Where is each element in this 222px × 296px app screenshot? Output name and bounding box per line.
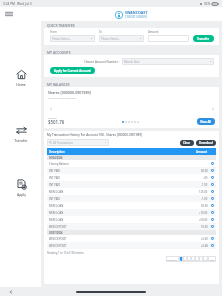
staticText: Wed, Jul 3 bbox=[17, 2, 32, 6]
button[interactable]: INT PAID bbox=[47, 195, 216, 202]
staticText: 5 bbox=[196, 258, 198, 261]
staticText: 10.00 bbox=[201, 225, 208, 229]
other: Transaction details bbox=[211, 169, 214, 172]
other: Transaction details bbox=[211, 183, 214, 186]
staticText: -.05 bbox=[203, 176, 208, 180]
staticText: Amount bbox=[196, 150, 208, 154]
staticText: MEM LOAN bbox=[49, 218, 199, 222]
staticText: Please Select... bbox=[101, 37, 139, 41]
staticText: WEB DEPOSIT bbox=[49, 244, 201, 248]
staticText: All Transactions bbox=[53, 141, 104, 145]
staticText: … bbox=[200, 258, 202, 261]
button[interactable]: Apply for Current Account bbox=[50, 67, 95, 74]
staticText: Description bbox=[49, 150, 196, 154]
button[interactable]: WEB DEPOSIT bbox=[47, 235, 216, 242]
staticText: +50.00 bbox=[199, 218, 208, 222]
staticText: Apply for Current Account bbox=[54, 69, 91, 73]
other: Transaction details bbox=[211, 218, 214, 221]
staticText: Next bbox=[209, 258, 215, 261]
staticText: To bbox=[99, 30, 103, 34]
button[interactable]: Next bbox=[208, 256, 216, 262]
button[interactable]: MEM LOAN bbox=[47, 216, 216, 223]
staticText: Choose Account Number : bbox=[84, 60, 120, 64]
button[interactable]: WEB DEPOSIT bbox=[47, 242, 216, 249]
button[interactable]: Back bbox=[8, 289, 13, 294]
staticText: WEB DEPOSIT bbox=[49, 225, 201, 229]
button[interactable] bbox=[148, 35, 189, 42]
other: Transaction details bbox=[211, 237, 214, 240]
button[interactable]: Closing Balance bbox=[47, 160, 216, 167]
button[interactable]: Clear bbox=[180, 140, 194, 146]
button[interactable]: Download bbox=[196, 140, 216, 146]
staticText: Balance bbox=[48, 116, 57, 119]
button[interactable]: Please Select... bbox=[50, 35, 95, 42]
button[interactable]: MEM LOAN bbox=[47, 202, 216, 209]
staticText: $501.76 bbox=[48, 119, 65, 125]
staticText: 50.00 bbox=[201, 204, 208, 208]
button[interactable]: INT PAID bbox=[47, 167, 216, 174]
button[interactable]: Apply bbox=[6, 177, 36, 197]
staticText: 05/04/2024 bbox=[49, 156, 63, 159]
staticText: MEM LOAN bbox=[49, 204, 201, 208]
button[interactable]: 5 bbox=[195, 256, 199, 262]
staticText: +10.00 bbox=[199, 211, 208, 215]
staticText: MY ACCOUNTS bbox=[47, 50, 71, 54]
staticText: MY BALANCES bbox=[47, 82, 70, 86]
button[interactable]: Home bbox=[6, 67, 36, 87]
staticText: 30/07/2024 bbox=[49, 231, 63, 234]
button[interactable]: 4 bbox=[191, 256, 195, 262]
staticText: 125.00 bbox=[199, 190, 208, 194]
button[interactable]: 3 bbox=[187, 256, 191, 262]
button[interactable]: WEB DEPOSIT bbox=[47, 223, 216, 230]
button[interactable]: INT PAID bbox=[47, 181, 216, 188]
staticText: CREDIT UNION bbox=[125, 15, 147, 19]
button[interactable]: INT PAID bbox=[47, 174, 216, 181]
staticText: Please Select... bbox=[52, 37, 90, 41]
staticText: Memb. Acct bbox=[124, 60, 209, 64]
button[interactable]: View All bbox=[197, 118, 215, 125]
staticText: Apply bbox=[17, 192, 26, 196]
staticText: Account # 000-0901989 bbox=[48, 96, 76, 99]
staticText: 3 bbox=[188, 258, 190, 261]
other: Transaction details bbox=[211, 176, 214, 179]
staticText: Previous bbox=[167, 258, 178, 261]
staticText: MEM LOAN bbox=[49, 211, 199, 215]
button[interactable]: 13 bbox=[203, 256, 208, 262]
staticText: Download bbox=[199, 141, 213, 145]
button[interactable]: Next account bbox=[210, 106, 215, 111]
staticText: 2 bbox=[184, 258, 186, 261]
staticText: Shares [000000-0901989] bbox=[48, 90, 91, 95]
button[interactable]: MEM LOAN bbox=[47, 209, 216, 216]
staticText: Home bbox=[16, 82, 26, 86]
other: Transaction details bbox=[211, 204, 214, 207]
button[interactable]: Transfer bbox=[193, 35, 214, 42]
button[interactable]: Menu bbox=[5, 11, 13, 17]
staticText: View All bbox=[200, 120, 212, 124]
staticText: MEM LOAN bbox=[49, 190, 199, 194]
button[interactable]: Transfer bbox=[6, 123, 36, 143]
staticText: From bbox=[50, 30, 57, 34]
button[interactable]: 2 bbox=[183, 256, 187, 262]
staticText: INT PAID bbox=[49, 176, 203, 180]
button[interactable]: Previous bbox=[166, 256, 179, 262]
staticText: INT PAID bbox=[49, 183, 201, 187]
staticText: WEB DEPOSIT bbox=[49, 237, 201, 241]
staticText: Showing 1 to 10 of 130 entries bbox=[47, 251, 84, 255]
button[interactable]: Please Select... bbox=[99, 35, 144, 42]
staticText: Transfer bbox=[14, 138, 28, 142]
button[interactable]: All Transactions bbox=[47, 139, 109, 146]
staticText: SWANCOAST bbox=[125, 10, 148, 15]
button[interactable]: MEM LOAN bbox=[47, 188, 216, 195]
button[interactable]: Previous account bbox=[48, 106, 53, 111]
staticText: -1.00 bbox=[201, 197, 208, 201]
button[interactable]: Memb. Acct bbox=[122, 58, 214, 65]
other: Transaction details bbox=[211, 197, 214, 200]
button[interactable]: 1 bbox=[179, 256, 183, 262]
staticText: 1 bbox=[180, 258, 182, 261]
staticText: INT PAID bbox=[49, 169, 201, 173]
staticText: +5.00 bbox=[201, 237, 208, 241]
other: Transaction details bbox=[211, 162, 214, 165]
button[interactable]: … bbox=[199, 256, 203, 262]
staticText: -1.00 bbox=[201, 183, 208, 187]
staticText: Transfer bbox=[197, 37, 210, 41]
